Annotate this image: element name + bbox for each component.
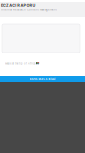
staticText: DAHA FAZLA BİLGİ xyxy=(29,77,55,81)
staticText: ECZACI RAPORU xyxy=(1,3,36,8)
button[interactable]: DAHA FAZLA BİLGİ xyxy=(0,76,85,82)
staticText: Internal Research Content Management xyxy=(1,8,57,11)
staticText: Made at the tip of Africa 🇿🇦 xyxy=(5,62,39,65)
